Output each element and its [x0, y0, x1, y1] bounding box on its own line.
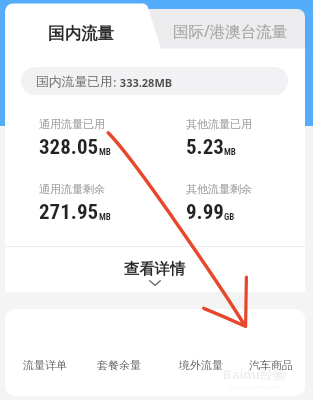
- staticText: 汽车商品: [249, 358, 293, 372]
- staticText: 国际/港澳台流量: [173, 20, 288, 41]
- button[interactable]: 流量详单: [19, 350, 71, 380]
- staticText: 其他流量剩余: [186, 182, 252, 196]
- button[interactable]: 查看详情: [5, 247, 305, 292]
- button[interactable]: 汽车商品: [245, 350, 297, 380]
- button[interactable]: 套餐余量: [93, 350, 145, 380]
- staticText: GB: [224, 212, 235, 223]
- staticText: MB: [224, 147, 236, 158]
- staticText: 其他流量已用: [186, 117, 252, 131]
- button[interactable]: 境外流量: [175, 350, 227, 380]
- staticText: 333.28MB: [117, 75, 173, 90]
- staticText: 通用流量已用: [39, 117, 105, 131]
- staticText: 套餐余量: [97, 358, 141, 372]
- staticText: 271.95: [39, 200, 99, 225]
- staticText: 境外流量: [179, 358, 223, 372]
- button[interactable]: 国际/港澳台流量: [156, 9, 305, 52]
- staticText: MB: [99, 147, 111, 158]
- staticText: 328.05: [39, 135, 99, 160]
- staticText: 9.99: [186, 200, 224, 225]
- staticText: 国内流量: [48, 23, 114, 44]
- staticText: Baidu经验: [223, 365, 286, 383]
- staticText: 5.23: [186, 135, 224, 160]
- button[interactable]: 国内流量: [5, 4, 157, 62]
- staticText: 流量详单: [23, 358, 67, 372]
- staticText: 查看详情: [124, 259, 186, 278]
- staticText: :: [113, 73, 117, 90]
- staticText: 国内流量已用: [36, 74, 113, 90]
- staticText: MB: [99, 212, 111, 223]
- staticText: 通用流量剩余: [39, 182, 105, 196]
